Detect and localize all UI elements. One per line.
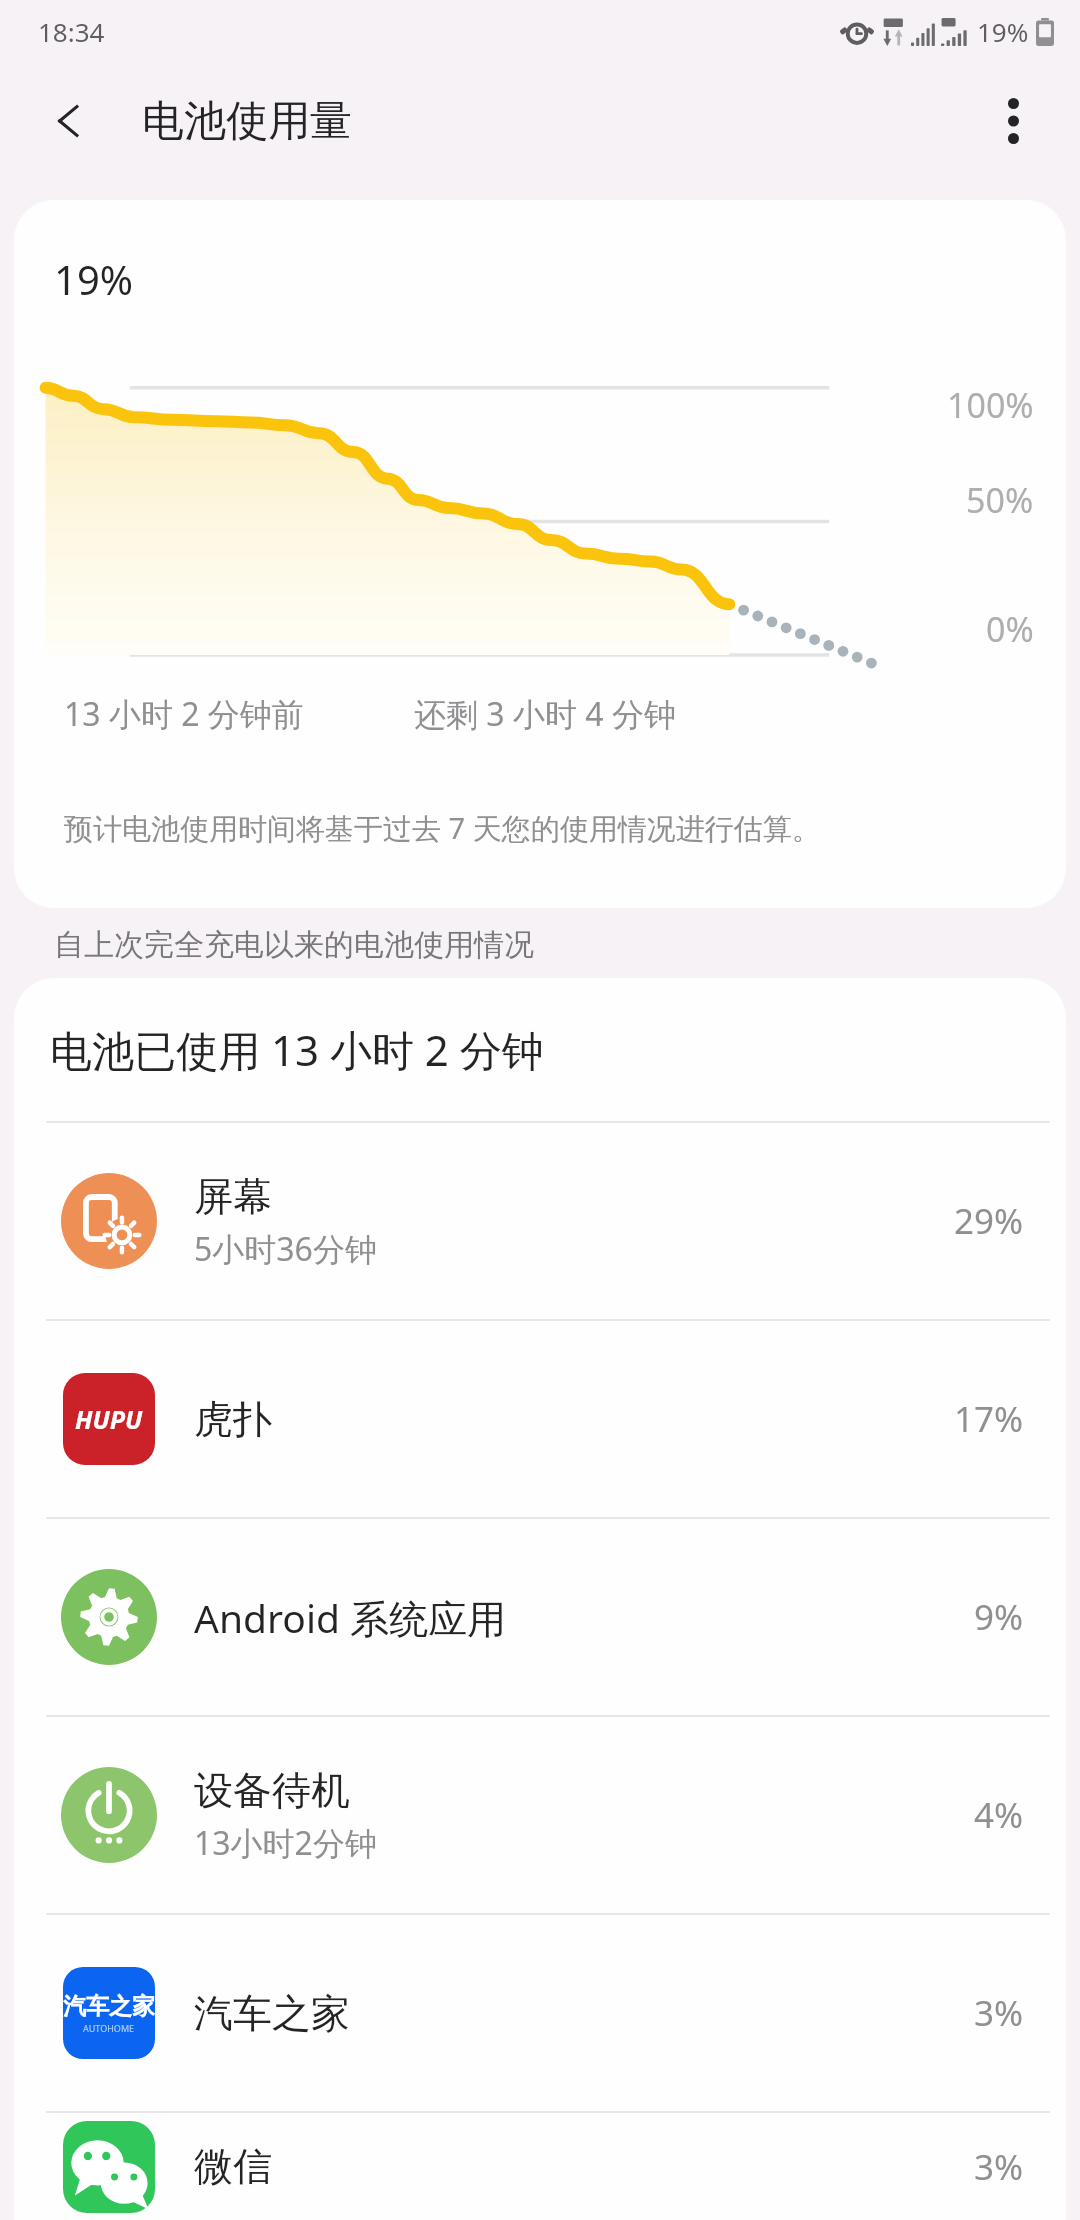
staticText: 汽车之家	[194, 1989, 350, 2038]
staticText: 4%	[974, 1791, 1024, 1839]
button[interactable]: Android 系统应用	[14, 1519, 1066, 1715]
button[interactable]: 19%	[14, 200, 1066, 908]
staticText: 预计电池使用时间将基于过去 7 天您的使用情况进行估算。	[64, 808, 821, 848]
staticText: 3%	[974, 1989, 1024, 2037]
staticText: 屏幕	[194, 1172, 272, 1221]
staticText: 18:34	[38, 14, 105, 49]
staticText: 9%	[974, 1593, 1024, 1641]
button[interactable]: Back	[36, 88, 102, 154]
staticText: 虎扑	[194, 1395, 272, 1444]
staticText: HUPU	[75, 1402, 143, 1436]
staticText: 19%	[54, 252, 133, 306]
staticText: 汽车之家	[63, 1992, 155, 2021]
button[interactable]: 微信	[14, 2113, 1066, 2220]
staticText: 还剩 3 小时 4 分钟	[414, 692, 676, 736]
staticText: 3%	[974, 2143, 1024, 2191]
button[interactable]: More options	[976, 84, 1050, 158]
staticText: 29%	[954, 1197, 1024, 1245]
staticText: 13 小时 2 分钟前	[64, 692, 304, 736]
button[interactable]: 汽车之家	[14, 1915, 1066, 2111]
staticText: 电池已使用 13 小时 2 分钟	[50, 1021, 544, 1078]
staticText: 设备待机	[194, 1766, 350, 1815]
staticText: Android 系统应用	[194, 1591, 507, 1644]
staticText: 5小时36分钟	[194, 1227, 377, 1271]
staticText: 50%	[966, 477, 1034, 523]
button[interactable]: 屏幕	[14, 1123, 1066, 1319]
staticText: 电池使用量	[142, 95, 352, 148]
button[interactable]: 设备待机	[14, 1717, 1066, 1913]
staticText: 微信	[194, 2142, 272, 2191]
staticText: 17%	[954, 1395, 1024, 1443]
staticText: 100%	[947, 382, 1034, 428]
staticText: 19%	[977, 14, 1029, 49]
button[interactable]: HUPU	[14, 1321, 1066, 1517]
staticText: AUTOHOME	[83, 2022, 135, 2034]
staticText: 0%	[986, 606, 1034, 652]
staticText: 13小时2分钟	[194, 1821, 377, 1865]
staticText: 自上次完全充电以来的电池使用情况	[54, 926, 534, 964]
